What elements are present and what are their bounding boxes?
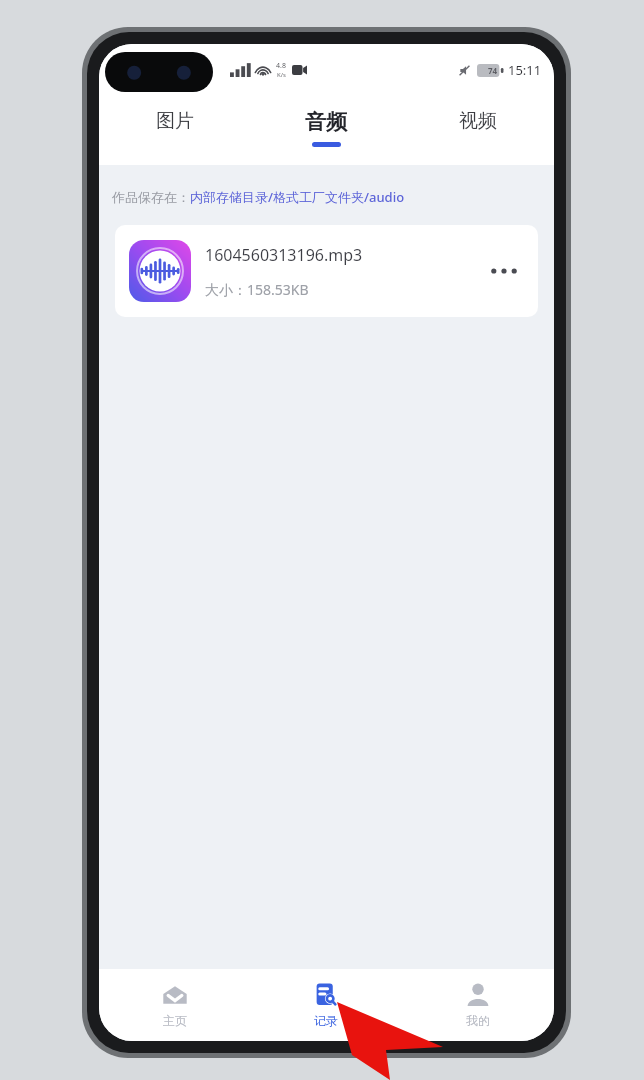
button[interactable]: 音频 (250, 103, 402, 165)
staticText: 1604560313196.mp3 (205, 244, 363, 266)
staticText: 音频 (305, 109, 347, 135)
staticText: 4.8 (276, 61, 286, 71)
button[interactable]: 主页 (99, 969, 250, 1041)
button[interactable]: 1604560313196.mp3 (115, 225, 538, 317)
staticText: 作品保存在： (112, 189, 190, 205)
staticText: 图片 (156, 109, 194, 133)
staticText: 主页 (163, 1013, 187, 1028)
button[interactable]: 视频 (402, 103, 554, 165)
staticText: K/s (277, 71, 286, 79)
staticText: 记录 (314, 1013, 338, 1028)
button[interactable]: 记录 (250, 969, 402, 1041)
button[interactable]: 我的 (402, 969, 554, 1041)
staticText: 内部存储目录/格式工厂文件夹/audio (190, 188, 405, 206)
button[interactable]: More options (484, 249, 524, 293)
staticText: 大小：158.53KB (205, 280, 309, 299)
staticText: 视频 (459, 109, 497, 133)
staticText: 我的 (466, 1013, 490, 1028)
staticText: 15:11 (508, 61, 542, 79)
staticText: 74 (488, 65, 498, 76)
button[interactable]: 图片 (99, 103, 250, 165)
